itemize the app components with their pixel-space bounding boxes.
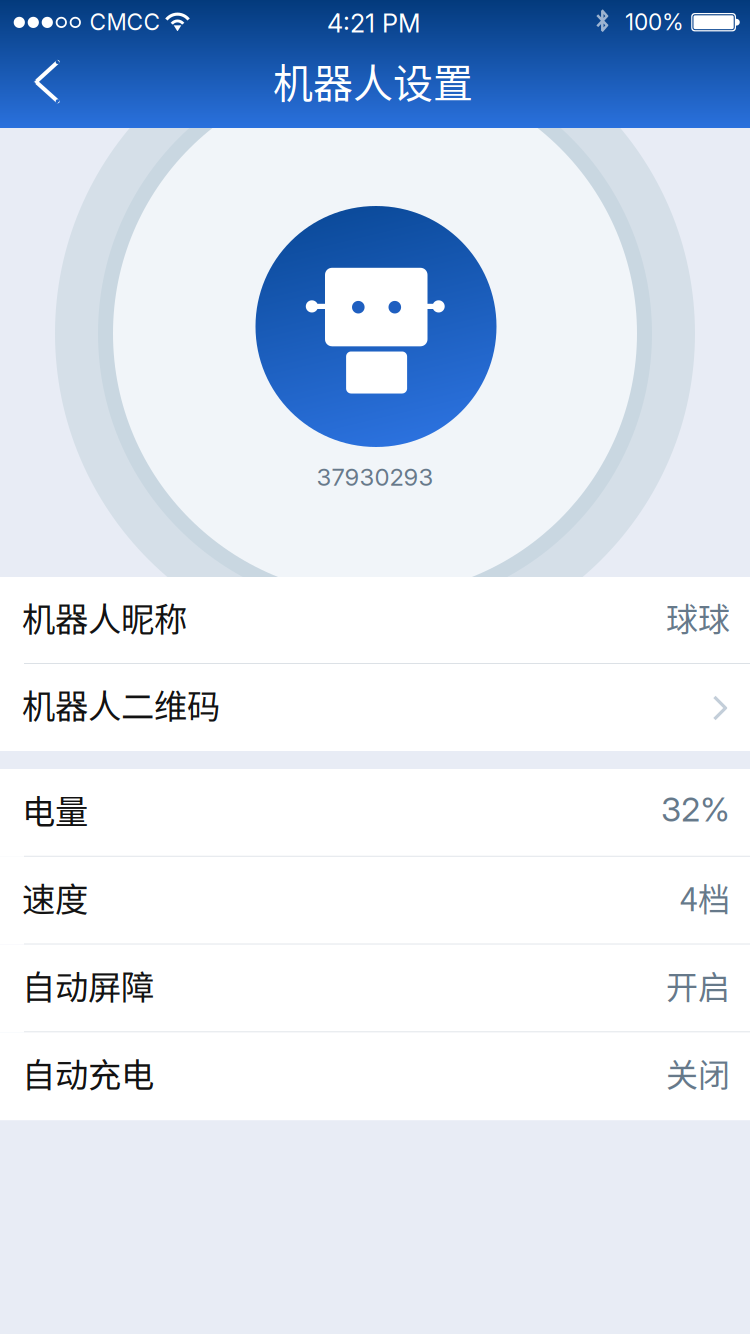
button[interactable]: 机器人昵称: [0, 577, 750, 664]
button[interactable]: 机器人二维码: [0, 664, 750, 751]
button[interactable]: 速度: [0, 857, 750, 945]
staticText: 电量: [22, 785, 88, 834]
button[interactable]: Back: [0, 44, 96, 128]
button[interactable]: 自动屏障: [0, 945, 750, 1032]
staticText: 速度: [22, 873, 88, 921]
staticText: 4:21 PM: [327, 8, 421, 39]
staticText: 4档: [680, 874, 730, 920]
button[interactable]: 自动充电: [0, 1032, 750, 1120]
button[interactable]: 电量: [0, 769, 750, 857]
staticText: 机器人二维码: [22, 680, 220, 728]
staticText: 关闭: [666, 1050, 730, 1096]
staticText: 100%: [625, 8, 684, 36]
staticText: CMCC: [89, 8, 160, 36]
staticText: 自动屏障: [22, 961, 154, 1009]
staticText: 机器人昵称: [22, 593, 187, 641]
staticText: 球球: [666, 594, 730, 640]
staticText: 32%: [661, 789, 730, 829]
staticText: 37930293: [316, 462, 433, 491]
staticText: 自动充电: [22, 1049, 154, 1097]
staticText: 机器人设置: [273, 51, 473, 109]
staticText: 开启: [666, 962, 730, 1008]
